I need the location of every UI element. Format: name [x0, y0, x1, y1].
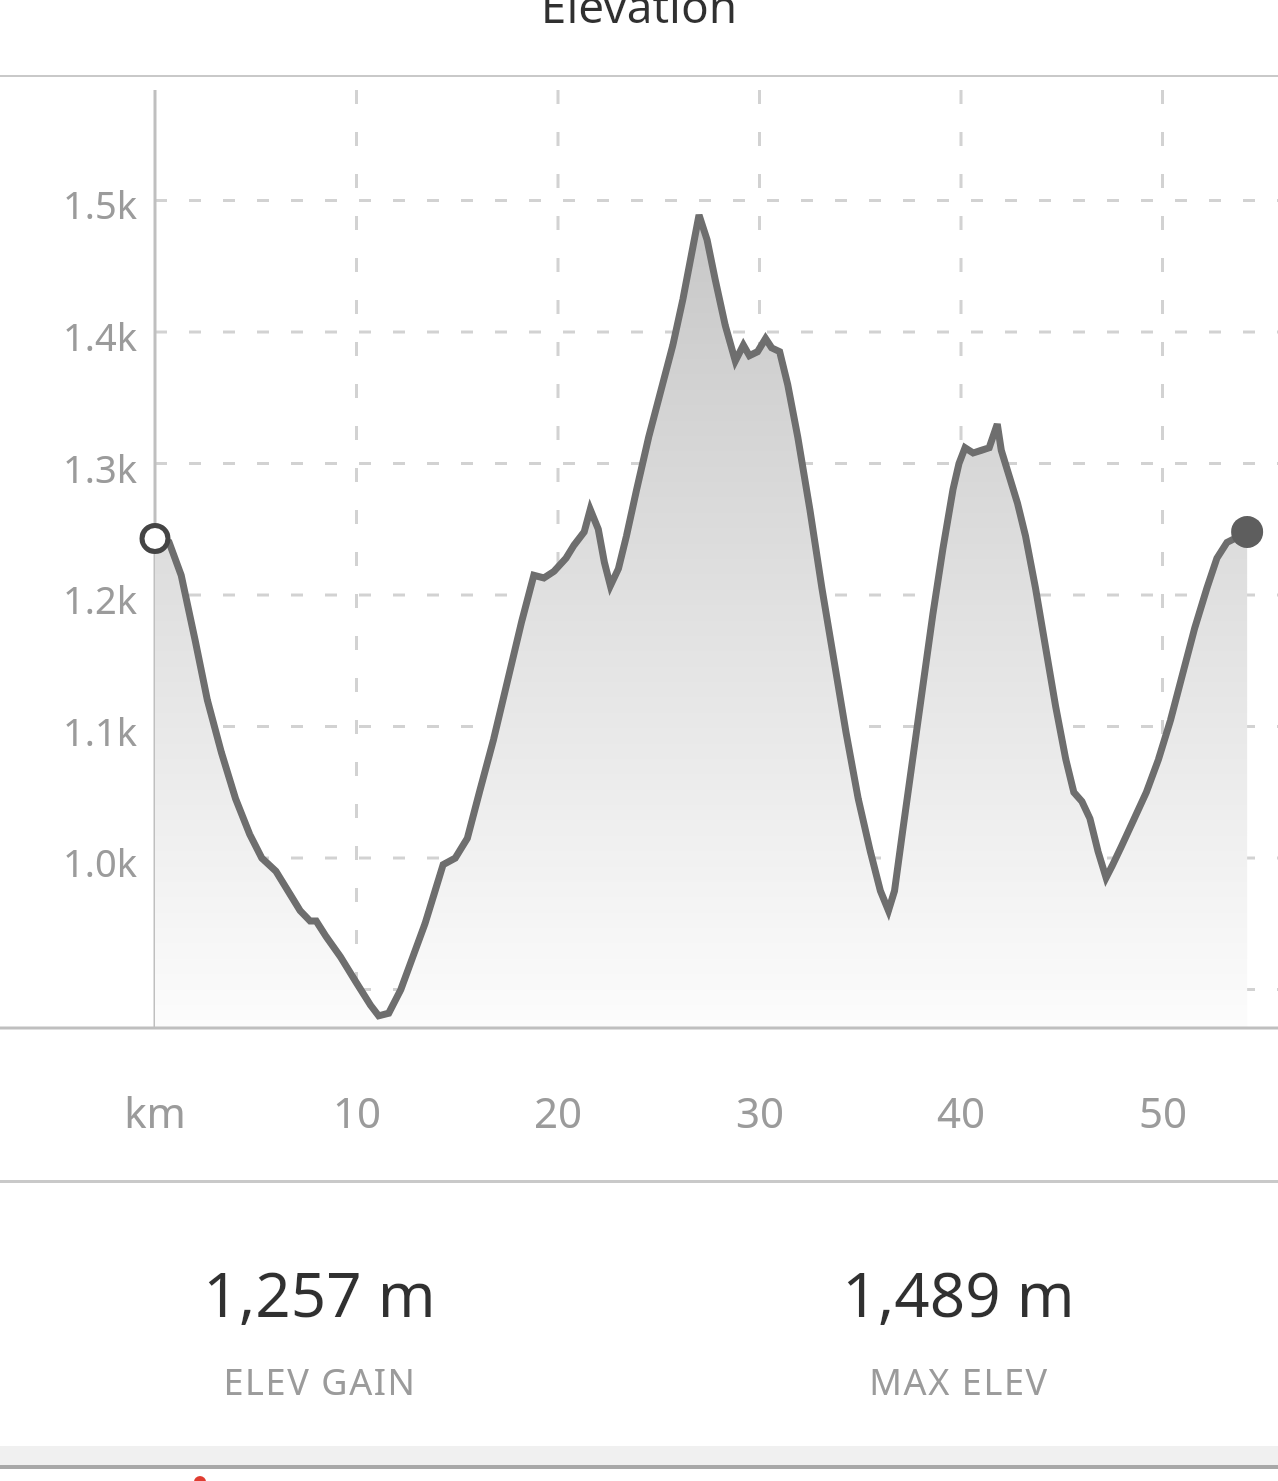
staticText: ELEV GAIN [223, 1357, 417, 1406]
staticText: km [75, 1083, 235, 1140]
button[interactable]: 1,489 m [639, 1183, 1278, 1406]
staticText: 1.4k [12, 310, 137, 362]
staticText: 1.2k [12, 573, 137, 625]
staticText: 1.5k [12, 178, 137, 230]
staticText: 20 [478, 1083, 638, 1140]
button[interactable]: Profile [160, 1476, 240, 1481]
staticText: 1,257 m [203, 1251, 436, 1335]
staticText: 1.0k [12, 836, 137, 888]
staticText: 1.3k [12, 442, 137, 494]
staticText: 50 [1083, 1083, 1243, 1140]
staticText: Elevation [0, 0, 1278, 37]
staticText: 10 [277, 1083, 437, 1140]
staticText: 1,489 m [842, 1251, 1075, 1335]
staticText: 40 [881, 1083, 1041, 1140]
button[interactable]: 1,257 m [0, 1183, 639, 1406]
staticText: 30 [680, 1083, 840, 1140]
staticText: 1.1k [12, 705, 137, 757]
staticText: MAX ELEV [869, 1357, 1049, 1406]
